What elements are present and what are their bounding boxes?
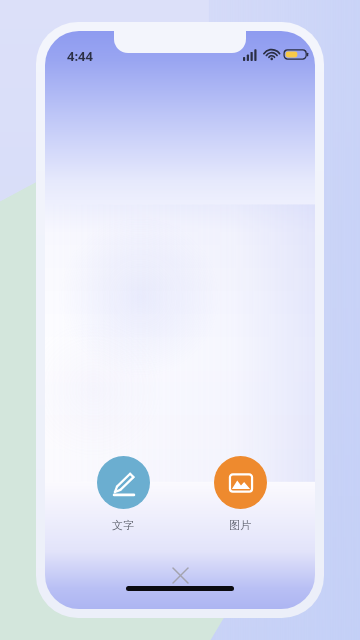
button[interactable]: 关闭 <box>160 555 200 595</box>
button[interactable]: 文字 <box>93 456 153 532</box>
staticText: 图片 <box>229 518 251 532</box>
staticText: 4:44 <box>67 47 93 65</box>
staticText: 文字 <box>112 518 134 532</box>
button[interactable]: 图片 <box>210 456 270 532</box>
other: 文字 <box>97 456 150 509</box>
other: 图片 <box>214 456 267 509</box>
